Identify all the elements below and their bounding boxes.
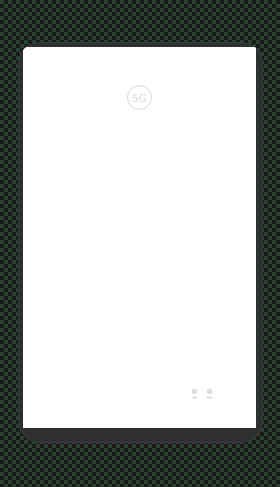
button[interactable]: Contact one xyxy=(191,388,198,399)
button[interactable]: Contact two xyxy=(206,388,213,399)
staticText: 5G xyxy=(132,90,147,105)
button[interactable]: 5G network xyxy=(127,85,152,110)
